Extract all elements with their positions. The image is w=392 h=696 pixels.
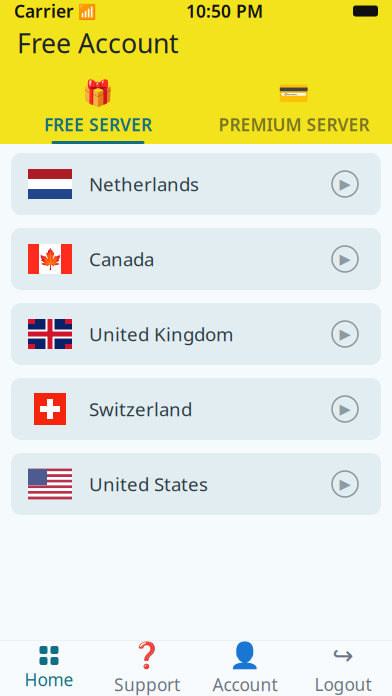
staticText: ▶ <box>339 476 350 492</box>
button[interactable]: ❓ <box>98 643 196 693</box>
staticText: Account <box>212 673 277 696</box>
staticText: Netherlands <box>89 172 199 196</box>
staticText: PREMIUM SERVER <box>218 113 369 136</box>
staticText: Switzerland <box>89 397 192 421</box>
staticText: ▶ <box>339 251 350 267</box>
staticText: ▶ <box>339 176 350 192</box>
staticText: Carrier <box>14 0 74 22</box>
staticText: 10:50 PM <box>186 0 263 22</box>
button[interactable]: 🎁 <box>0 71 196 144</box>
staticText: ▶ <box>339 401 350 417</box>
staticText: ↪ <box>332 641 353 670</box>
staticText: ▶ <box>339 326 350 342</box>
button[interactable]: ↪ <box>294 643 392 693</box>
staticText: ❓ <box>131 641 163 670</box>
staticText: Canada <box>89 247 154 271</box>
button[interactable]: United States <box>11 453 381 515</box>
button[interactable]: United Kingdom <box>11 303 381 365</box>
button[interactable]: 💳 <box>196 71 392 144</box>
button[interactable]: Home <box>0 643 98 693</box>
staticText: 👤 <box>229 641 261 670</box>
staticText: 🍁 <box>37 248 62 270</box>
staticText: 💳 <box>278 79 310 108</box>
staticText: Home <box>24 668 73 691</box>
staticText: United Kingdom <box>89 322 233 346</box>
staticText: Free Account <box>17 25 179 61</box>
button[interactable]: Switzerland <box>11 378 381 440</box>
staticText: Logout <box>314 673 371 696</box>
staticText: 🎁 <box>82 79 114 108</box>
staticText: 📶 <box>74 1 96 21</box>
staticText: United States <box>89 472 208 496</box>
button[interactable]: Netherlands <box>11 153 381 215</box>
staticText: Support <box>114 673 180 696</box>
button[interactable]: 👤 <box>196 643 294 693</box>
staticText: FREE SERVER <box>44 113 152 136</box>
button[interactable]: 🍁 <box>11 228 381 290</box>
